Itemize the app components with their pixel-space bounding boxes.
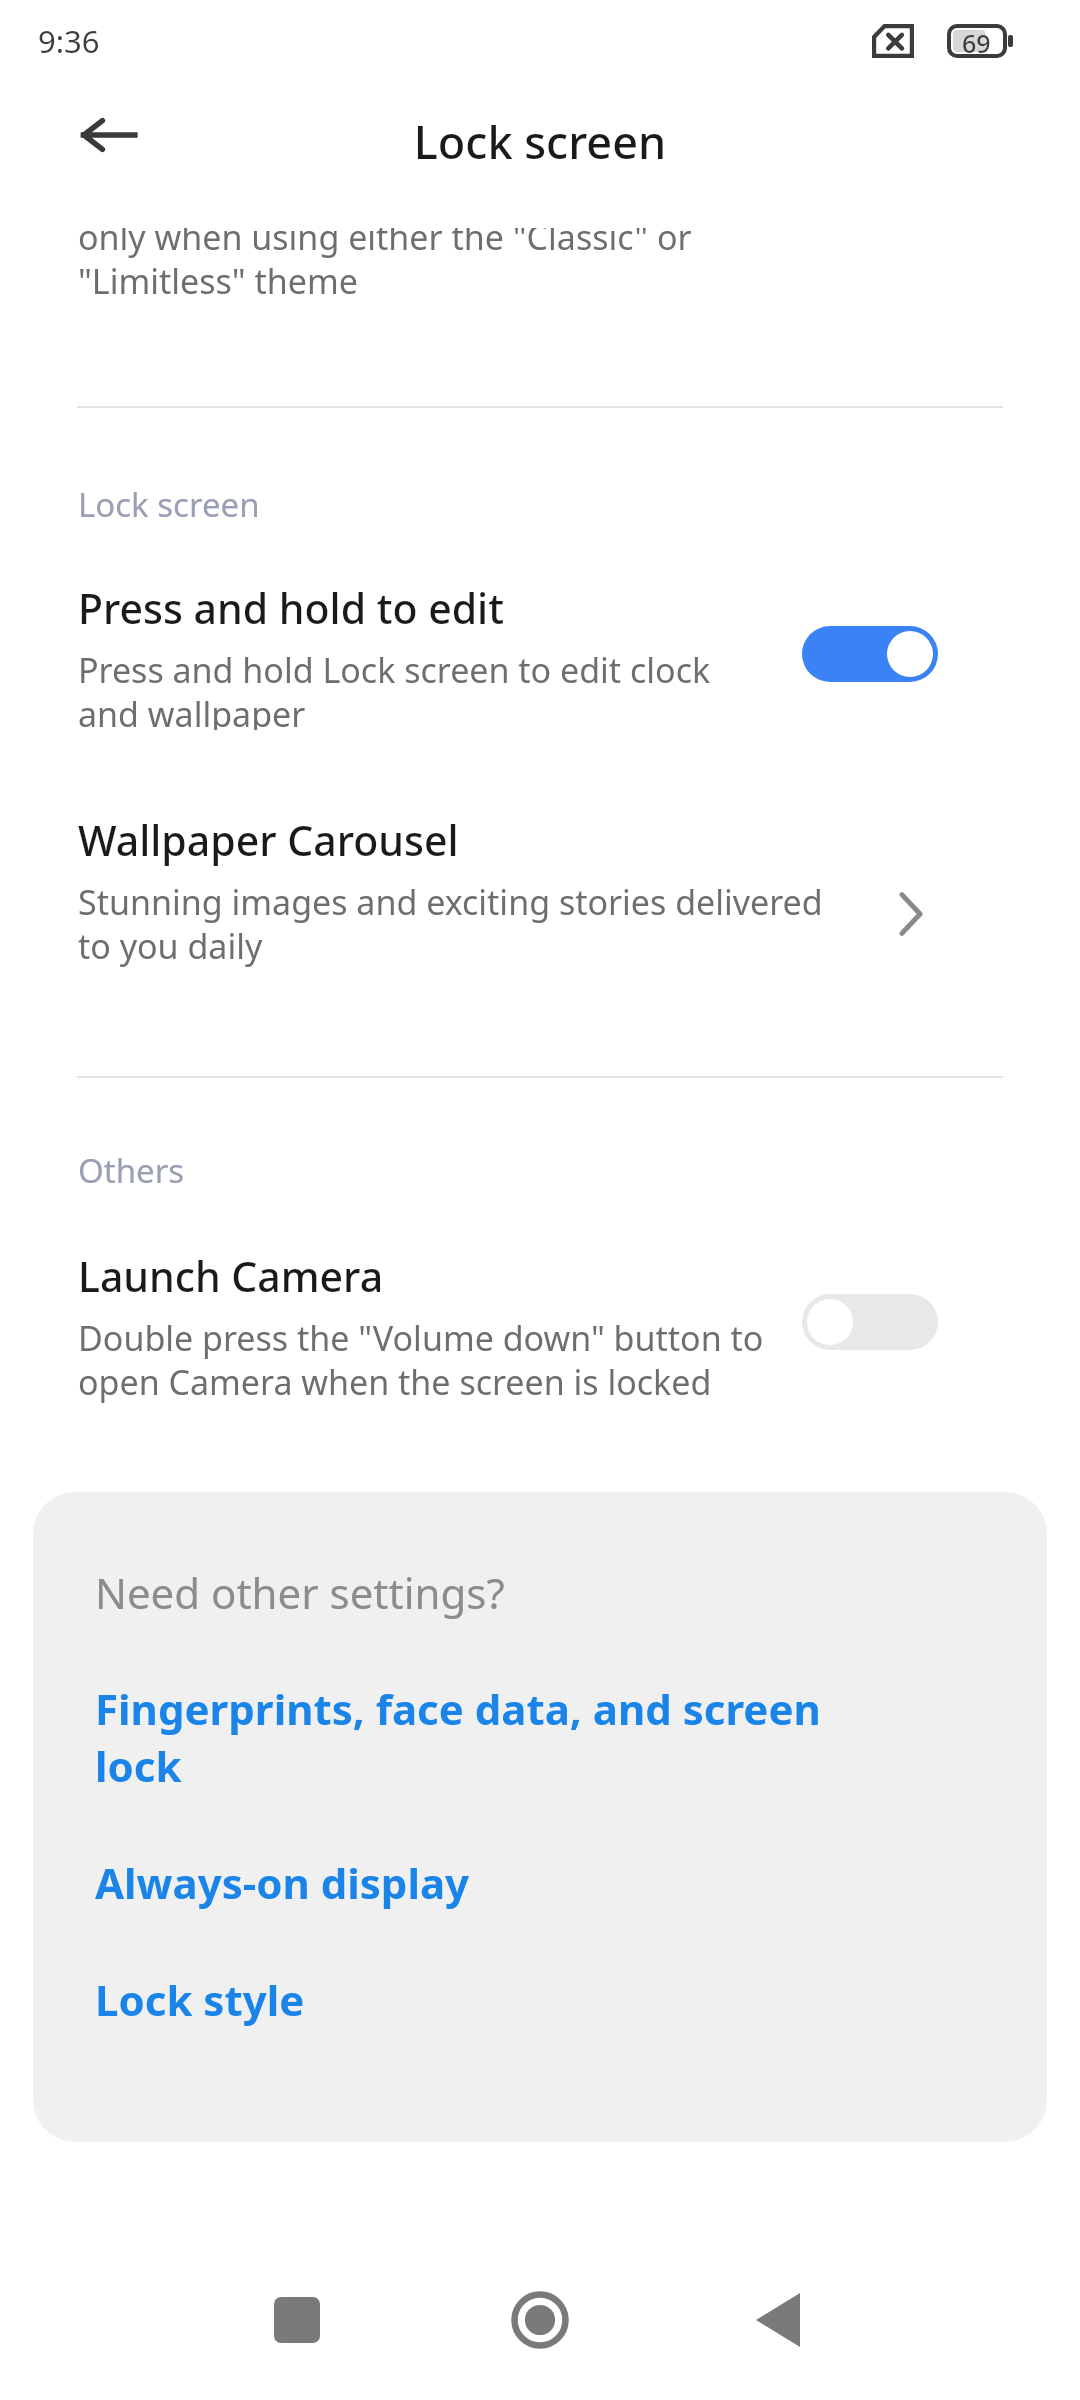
staticText: Always-on display	[95, 1854, 470, 1911]
button[interactable]: Back	[718, 2278, 838, 2362]
staticText: Lock style	[95, 1971, 305, 2028]
button[interactable]: Wallpaper Carousel	[0, 800, 1080, 975]
staticText: Wallpaper Carousel	[78, 812, 459, 868]
button[interactable]: Always-on display	[33, 1850, 1047, 1915]
button[interactable]: Press and hold to edit toggle	[800, 570, 1080, 730]
button[interactable]: Press and hold to edit	[0, 570, 1080, 730]
staticText: Need other settings?	[95, 1564, 505, 1621]
button[interactable]: Back	[62, 104, 154, 166]
button[interactable]: Launch Camera toggle	[800, 1238, 1080, 1418]
staticText: 69	[962, 26, 991, 60]
button[interactable]: Home	[480, 2278, 600, 2362]
button[interactable]: Recents	[237, 2278, 357, 2362]
button[interactable]: Lock style	[33, 1967, 1047, 2032]
staticText: only when using either the "Classic" or …	[78, 228, 692, 304]
staticText: Launch Camera	[78, 1248, 384, 1304]
button[interactable]: Launch Camera	[0, 1238, 1080, 1418]
staticText: Others	[78, 1148, 185, 1193]
staticText: Lock screen	[78, 482, 260, 527]
staticText: Stunning images and exciting stories del…	[78, 879, 823, 969]
staticText: Double press the "Volume down" button to…	[78, 1315, 764, 1405]
staticText: 9:36	[38, 20, 100, 62]
staticText: Press and hold Lock screen to edit clock…	[78, 647, 711, 730]
staticText: Press and hold to edit	[78, 580, 504, 636]
staticText: Lock screen	[0, 111, 1080, 172]
staticText: Fingerprints, face data, and screen lock	[95, 1680, 821, 1794]
button[interactable]: Fingerprints, face data, and screen lock	[33, 1676, 1047, 1798]
